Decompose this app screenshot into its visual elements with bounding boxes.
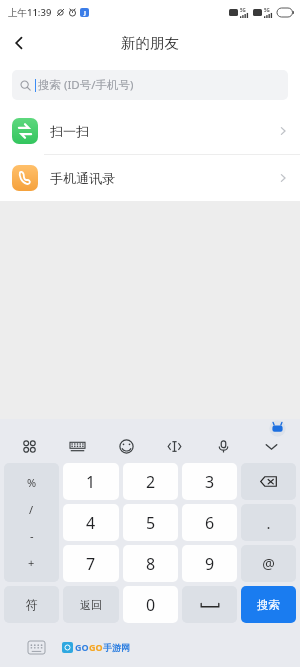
- staticText: 上午11:39: [8, 6, 52, 19]
- staticText: J: [84, 9, 86, 17]
- button[interactable]: 切换输入法: [28, 641, 45, 654]
- button[interactable]: 智能助手: [269, 420, 286, 437]
- button[interactable]: 收起键盘: [258, 433, 284, 459]
- button[interactable]: 手机通讯录: [0, 155, 300, 201]
- staticText: +: [28, 555, 35, 570]
- staticText: 返回: [80, 598, 102, 612]
- staticText: GO: [89, 641, 103, 653]
- button[interactable]: 空格: [182, 586, 237, 623]
- button[interactable]: .: [241, 504, 296, 541]
- button[interactable]: 更多: [16, 433, 42, 459]
- staticText: 5G: [240, 7, 246, 13]
- staticText: 0: [146, 594, 156, 616]
- staticText: 搜索: [257, 598, 280, 612]
- staticText: 符: [26, 597, 38, 612]
- button[interactable]: 返回: [63, 586, 119, 623]
- button[interactable]: 编辑: [161, 433, 187, 459]
- staticText: -: [30, 528, 34, 543]
- button[interactable]: 4: [63, 504, 119, 541]
- staticText: 9: [205, 553, 215, 575]
- button[interactable]: 8: [123, 545, 178, 582]
- staticText: 8: [146, 553, 156, 575]
- staticText: 2: [146, 471, 156, 493]
- button[interactable]: 搜索: [241, 586, 296, 623]
- button[interactable]: 2: [123, 463, 178, 500]
- button[interactable]: @: [241, 545, 296, 582]
- staticText: GO: [75, 641, 89, 653]
- button[interactable]: 9: [182, 545, 237, 582]
- staticText: 手游网: [103, 642, 130, 653]
- button[interactable]: 搜索 (ID号/手机号): [12, 70, 288, 100]
- button[interactable]: %: [4, 463, 59, 582]
- staticText: 新的朋友: [121, 34, 179, 52]
- staticText: 4: [86, 512, 96, 534]
- button[interactable]: 5: [123, 504, 178, 541]
- staticText: 7: [86, 553, 96, 575]
- staticText: @: [262, 554, 275, 573]
- button[interactable]: 删除: [241, 463, 296, 500]
- staticText: 手机通讯录: [50, 170, 115, 186]
- button[interactable]: 3: [182, 463, 237, 500]
- staticText: 搜索 (ID号/手机号): [38, 77, 134, 93]
- button[interactable]: 语音输入: [210, 433, 236, 459]
- button[interactable]: 1: [63, 463, 119, 500]
- button[interactable]: 返回: [0, 24, 38, 62]
- button[interactable]: 表情: [113, 433, 139, 459]
- staticText: 1: [86, 471, 96, 493]
- button[interactable]: 0: [123, 586, 178, 623]
- staticText: %: [27, 475, 37, 490]
- button[interactable]: 6: [182, 504, 237, 541]
- staticText: 3: [205, 471, 215, 493]
- button[interactable]: 扫一扫: [0, 108, 300, 154]
- staticText: /: [29, 502, 34, 517]
- staticText: .: [266, 513, 271, 533]
- button[interactable]: 键盘: [64, 433, 90, 459]
- staticText: 6: [205, 512, 215, 534]
- staticText: 5G: [264, 7, 270, 13]
- staticText: 扫一扫: [50, 123, 89, 139]
- button[interactable]: 7: [63, 545, 119, 582]
- button[interactable]: 符: [4, 586, 59, 623]
- staticText: 5: [146, 512, 156, 534]
